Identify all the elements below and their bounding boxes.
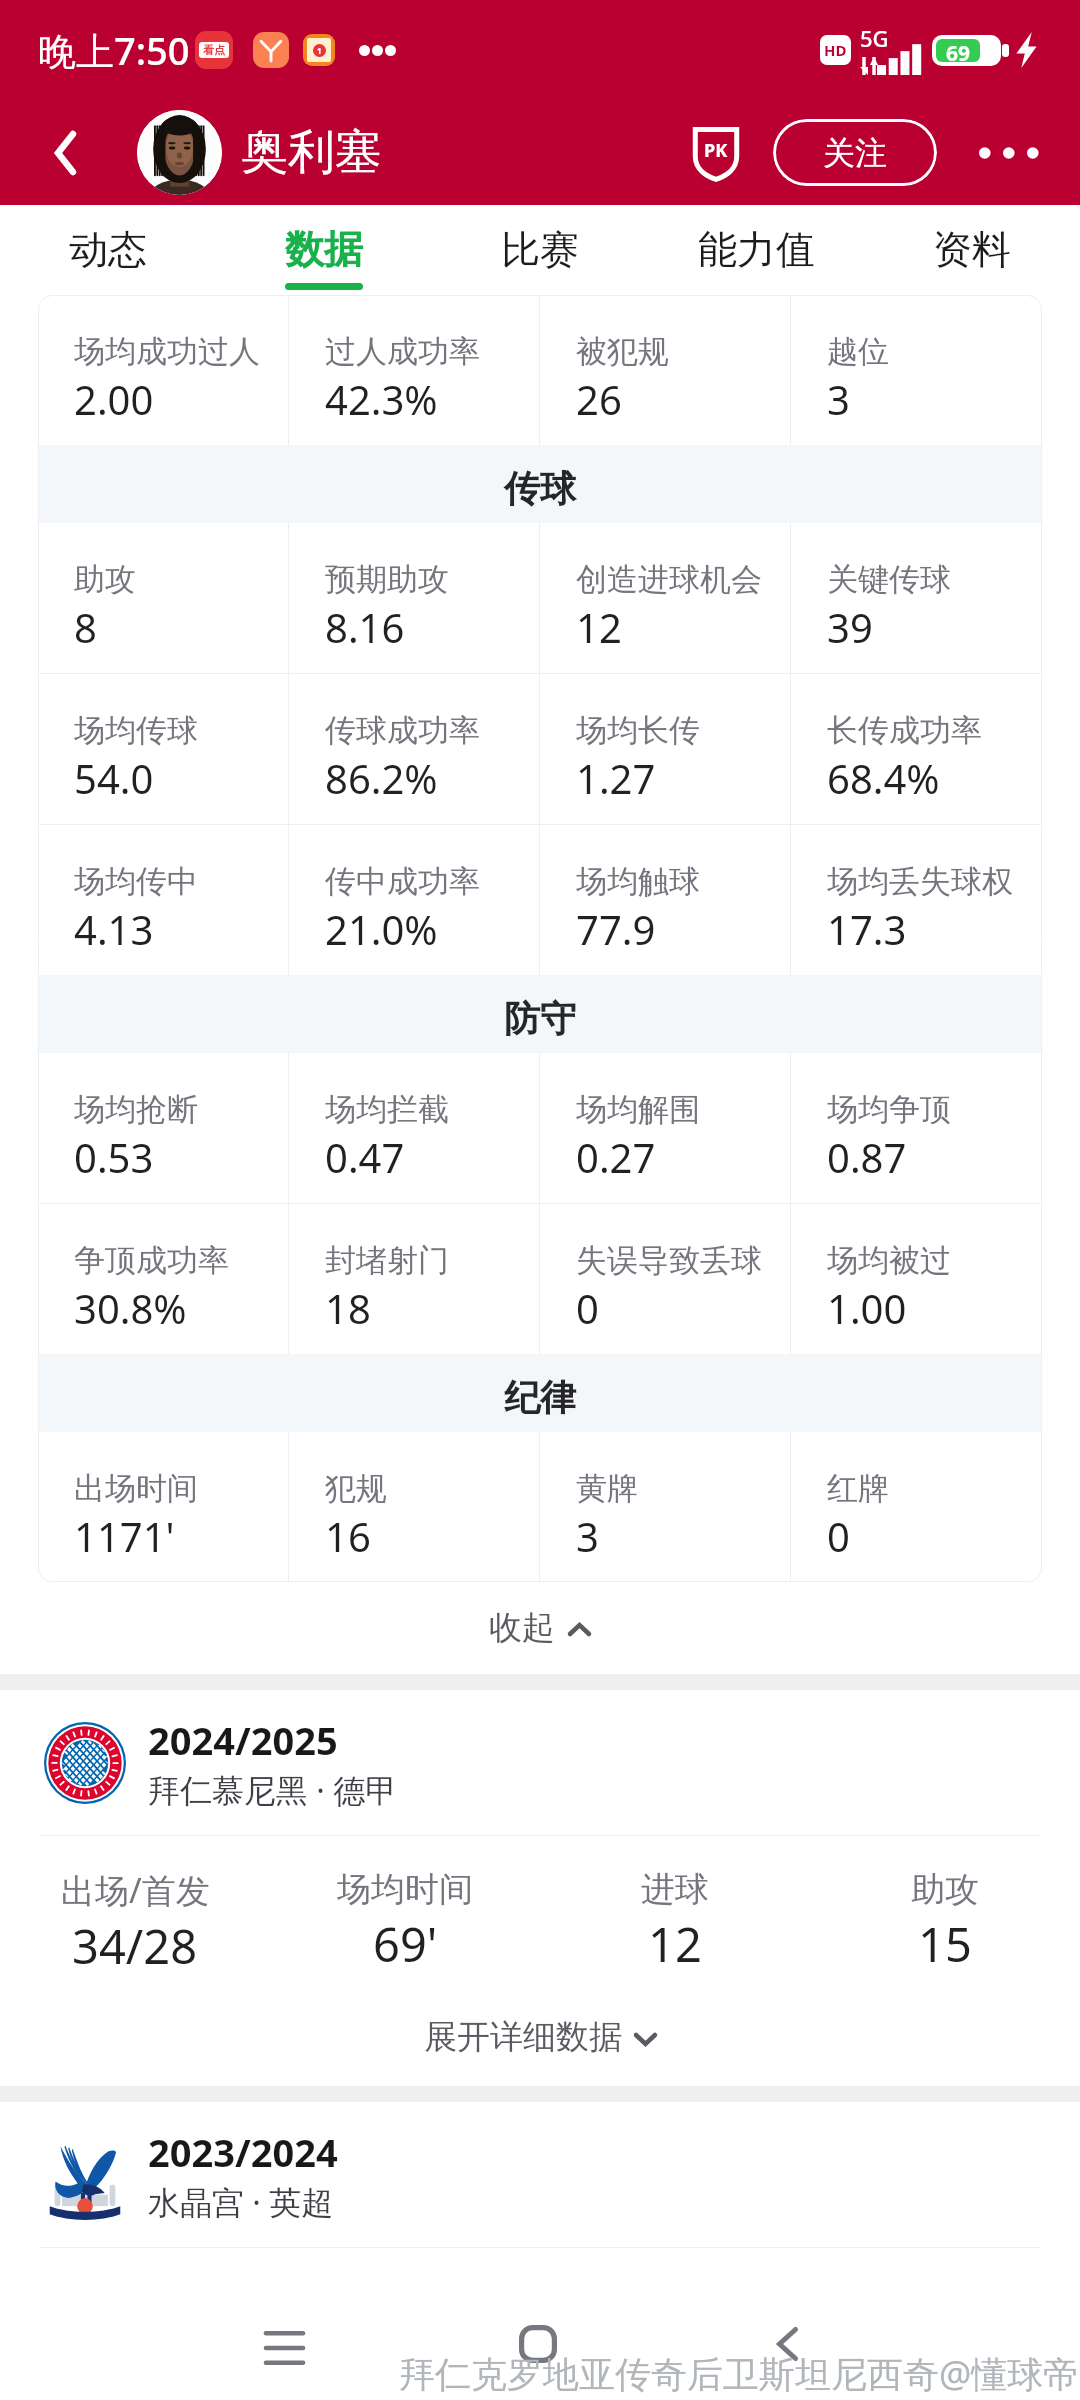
staticText: 封堵射门 bbox=[325, 1241, 449, 1280]
staticText: 0 bbox=[827, 1509, 850, 1563]
staticText: 5G bbox=[860, 23, 889, 53]
button[interactable]: 2023/2024 bbox=[0, 2102, 1080, 2247]
staticText: HD bbox=[824, 40, 847, 60]
staticText: 3 bbox=[576, 1509, 599, 1563]
staticText: 8 bbox=[74, 600, 97, 654]
staticText: 越位 bbox=[827, 332, 889, 371]
staticText: 过人成功率 bbox=[325, 332, 480, 371]
staticText: 拜仁克罗地亚传奇后卫斯坦尼西奇@懂球帝 bbox=[399, 2349, 1080, 2398]
staticText: 动态 bbox=[69, 225, 147, 274]
staticText: 1.27 bbox=[576, 751, 656, 805]
staticText: 12 bbox=[648, 1912, 702, 1976]
staticText: 拜仁慕尼黑 · 德甲 bbox=[148, 1768, 398, 1812]
staticText: 场均传球 bbox=[74, 711, 198, 750]
button[interactable]: 数据 bbox=[216, 205, 432, 295]
staticText: 失误导致丢球 bbox=[576, 1241, 762, 1280]
staticText: 资料 bbox=[933, 225, 1011, 274]
button[interactable]: 2024/2025 bbox=[0, 1690, 1080, 1835]
staticText: 纪律 bbox=[504, 1375, 576, 1420]
button[interactable]: More options bbox=[937, 100, 1080, 205]
staticText: 1 bbox=[317, 45, 322, 56]
staticText: 助攻 bbox=[74, 560, 136, 599]
staticText: 68.4% bbox=[827, 751, 940, 805]
staticText: 0.27 bbox=[576, 1130, 656, 1184]
button[interactable]: Back bbox=[729, 2306, 846, 2382]
staticText: 26 bbox=[576, 372, 622, 426]
staticText: 能力值 bbox=[698, 225, 815, 274]
button[interactable]: 收起 bbox=[0, 1582, 1080, 1674]
staticText: 1.00 bbox=[827, 1281, 907, 1335]
button[interactable]: PK bbox=[681, 100, 751, 205]
staticText: 关注 bbox=[823, 133, 887, 173]
button[interactable]: 资料 bbox=[864, 205, 1080, 295]
staticText: 场均传中 bbox=[74, 862, 198, 901]
staticText: 0 bbox=[576, 1281, 599, 1335]
button[interactable]: 关注 bbox=[773, 119, 937, 186]
staticText: 场均解围 bbox=[576, 1090, 700, 1129]
staticText: 场均长传 bbox=[576, 711, 700, 750]
staticText: 场均争顶 bbox=[827, 1090, 951, 1129]
button[interactable]: Home bbox=[479, 2306, 596, 2382]
staticText: 传中成功率 bbox=[325, 862, 480, 901]
staticText: 关键传球 bbox=[827, 560, 951, 599]
staticText: 晚上7:50 bbox=[38, 24, 190, 76]
staticText: 2023/2024 bbox=[148, 2126, 338, 2178]
staticText: 奥利塞 bbox=[241, 123, 382, 182]
staticText: 2.00 bbox=[74, 372, 154, 426]
staticText: 看点 bbox=[203, 43, 225, 57]
staticText: 0.53 bbox=[74, 1130, 154, 1184]
staticText: 69' bbox=[373, 1912, 438, 1976]
staticText: 助攻 bbox=[911, 1868, 979, 1911]
staticText: 3 bbox=[827, 372, 850, 426]
staticText: 4.13 bbox=[74, 902, 154, 956]
staticText: 30.8% bbox=[74, 1281, 187, 1335]
staticText: 出场/首发 bbox=[61, 1867, 210, 1913]
button[interactable]: 动态 bbox=[0, 205, 216, 295]
staticText: 39 bbox=[827, 600, 873, 654]
staticText: 场均丢失球权 bbox=[827, 862, 1013, 901]
staticText: PK bbox=[704, 138, 728, 163]
staticText: 21.0% bbox=[325, 902, 438, 956]
staticText: 创造进球机会 bbox=[576, 560, 762, 599]
staticText: 进球 bbox=[641, 1868, 709, 1911]
staticText: 红牌 bbox=[827, 1469, 889, 1508]
button[interactable]: Recents bbox=[226, 2310, 343, 2386]
staticText: 犯规 bbox=[325, 1469, 387, 1508]
button[interactable]: Back bbox=[0, 100, 132, 205]
staticText: 预期助攻 bbox=[325, 560, 449, 599]
staticText: 被犯规 bbox=[576, 332, 669, 371]
staticText: 场均触球 bbox=[576, 862, 700, 901]
staticText: 0.87 bbox=[827, 1130, 907, 1184]
staticText: 黄牌 bbox=[576, 1469, 638, 1508]
staticText: 54.0 bbox=[74, 751, 154, 805]
button[interactable]: 展开详细数据 bbox=[0, 1988, 1080, 2086]
staticText: 8.16 bbox=[325, 600, 405, 654]
staticText: 2024/2025 bbox=[148, 1714, 338, 1766]
staticText: 传球 bbox=[504, 466, 576, 511]
staticText: 17.3 bbox=[827, 902, 907, 956]
staticText: 15 bbox=[918, 1912, 972, 1976]
staticText: 场均被过 bbox=[827, 1241, 951, 1280]
staticText: 场均成功过人 bbox=[74, 332, 260, 371]
button[interactable]: 能力值 bbox=[648, 205, 864, 295]
staticText: 场均抢断 bbox=[74, 1090, 198, 1129]
staticText: 1171' bbox=[74, 1509, 175, 1563]
staticText: 0.47 bbox=[325, 1130, 405, 1184]
staticText: 86.2% bbox=[325, 751, 438, 805]
staticText: 场均时间 bbox=[337, 1868, 473, 1911]
staticText: 42.3% bbox=[325, 372, 438, 426]
staticText: 展开详细数据 bbox=[424, 2016, 622, 2058]
staticText: 16 bbox=[325, 1509, 371, 1563]
staticText: 77.9 bbox=[576, 902, 656, 956]
staticText: 数据 bbox=[285, 225, 363, 274]
staticText: 防守 bbox=[504, 996, 576, 1041]
staticText: 69 bbox=[946, 39, 971, 62]
staticText: 出场时间 bbox=[74, 1469, 198, 1508]
staticText: 收起 bbox=[489, 1607, 555, 1649]
staticText: 比赛 bbox=[501, 225, 579, 274]
button[interactable]: Player avatar bbox=[137, 110, 222, 195]
staticText: 18 bbox=[325, 1281, 371, 1335]
staticText: 长传成功率 bbox=[827, 711, 982, 750]
button[interactable]: 比赛 bbox=[432, 205, 648, 295]
staticText: 12 bbox=[576, 600, 622, 654]
